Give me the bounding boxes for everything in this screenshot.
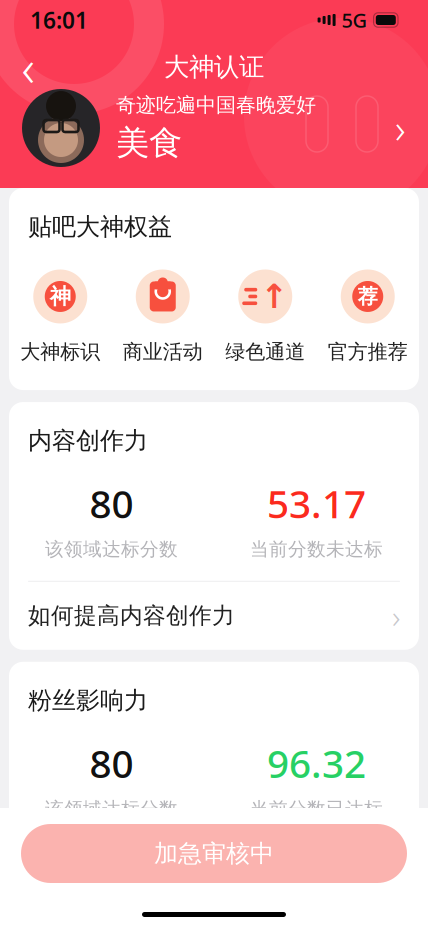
button[interactable]: 如何提高内容创作力 xyxy=(9,582,419,650)
staticText: 绿色通道 xyxy=(225,339,305,364)
staticText: 16:01 xyxy=(30,5,88,35)
staticText: 当前分数未达标 xyxy=(250,538,383,561)
staticText: ↑ xyxy=(260,278,288,315)
staticText: 官方推荐 xyxy=(328,339,408,364)
staticText: 荐 xyxy=(358,284,378,309)
staticText: 80 xyxy=(89,477,133,529)
button[interactable]: 神 xyxy=(9,267,111,364)
staticText: 加急审核中 xyxy=(154,839,274,868)
staticText: 如何提高内容创作力 xyxy=(28,602,235,630)
staticText: › xyxy=(392,595,400,637)
button[interactable]: 商业活动 xyxy=(111,267,214,364)
staticText: 商业活动 xyxy=(123,339,203,364)
staticText: 内容创作力 xyxy=(28,426,148,455)
button[interactable]: 奇迹吃遍中国春晚爱好 xyxy=(0,89,428,167)
staticText: 该领域达标分数 xyxy=(45,798,178,820)
staticText: 如何提高粉丝影响力 xyxy=(28,862,235,889)
staticText: 96.32 xyxy=(267,737,366,789)
button[interactable]: 荐 xyxy=(316,267,419,364)
staticText: 53.17 xyxy=(267,477,366,529)
staticText: 粉丝影响力 xyxy=(28,686,148,715)
staticText: 大神认证 xyxy=(164,51,264,82)
staticText: 该领域达标分数 xyxy=(45,538,178,561)
staticText: 大神标识 xyxy=(20,339,100,364)
button[interactable]: ↑ xyxy=(214,267,316,364)
staticText: ‹ xyxy=(21,33,34,101)
staticText: 奇迹吃遍中国春晚爱好 xyxy=(116,93,316,117)
staticText: 神 xyxy=(50,283,71,310)
button[interactable]: 加急审核中 xyxy=(21,824,407,883)
staticText: › xyxy=(392,854,400,897)
staticText: 当前分数已达标 xyxy=(250,798,383,820)
staticText: › xyxy=(395,101,406,154)
button[interactable]: Back xyxy=(4,45,52,89)
staticText: 美食 xyxy=(116,122,182,163)
staticText: 5G xyxy=(342,7,368,33)
button[interactable]: 如何提高粉丝影响力 xyxy=(9,842,419,910)
staticText: 贴吧大神权益 xyxy=(28,212,172,241)
staticText: 80 xyxy=(89,737,133,789)
